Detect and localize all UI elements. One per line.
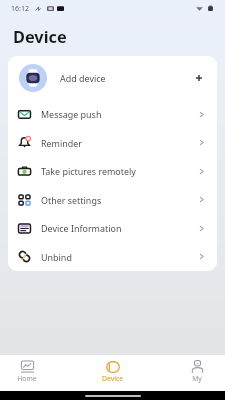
button[interactable]: Add device xyxy=(8,56,217,100)
staticText: Take pictures remotely xyxy=(41,165,136,177)
staticText: Unbind xyxy=(41,251,72,263)
staticText: Device xyxy=(102,374,123,383)
staticText: Device Information xyxy=(41,222,122,234)
staticText: My xyxy=(192,374,202,383)
staticText: Message push xyxy=(41,108,102,120)
button[interactable]: Message push xyxy=(8,100,217,128)
staticText: Reminder xyxy=(41,137,83,149)
button[interactable]: Device Information xyxy=(8,214,217,242)
staticText: Home xyxy=(17,374,37,383)
button[interactable]: Other settings xyxy=(8,185,217,214)
button[interactable]: Device xyxy=(90,355,134,391)
staticText: Other settings xyxy=(41,194,102,206)
button[interactable]: Home xyxy=(5,355,49,391)
button[interactable]: Reminder xyxy=(8,128,217,157)
other: Add device xyxy=(193,72,205,84)
button[interactable]: My xyxy=(175,355,219,391)
staticText: 16:12 xyxy=(11,4,29,14)
button[interactable]: Take pictures remotely xyxy=(8,157,217,185)
staticText: Add device xyxy=(60,72,106,84)
button[interactable]: Unbind xyxy=(8,242,217,271)
staticText: Device xyxy=(13,26,67,48)
